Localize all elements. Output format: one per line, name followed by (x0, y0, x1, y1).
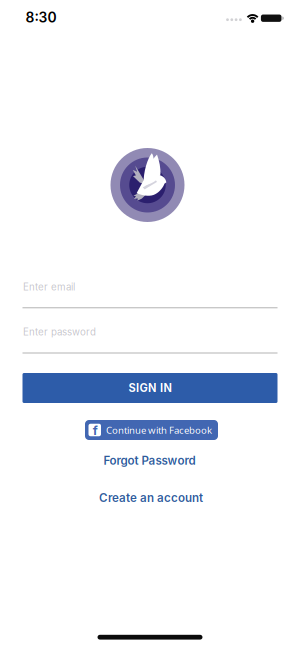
staticText: Enter password (23, 326, 96, 338)
staticText: Continue with Facebook (106, 423, 212, 437)
staticText: Forgot Password (103, 453, 195, 467)
button[interactable]: f (85, 420, 218, 440)
button[interactable]: Create an account (99, 491, 203, 505)
staticText: Enter email (23, 281, 75, 293)
staticText: f (93, 423, 98, 438)
button[interactable]: SIGN IN (22, 373, 277, 403)
staticText: 8:30 (25, 9, 56, 26)
staticText: Create an account (99, 491, 203, 505)
staticText: SIGN IN (128, 381, 171, 395)
button[interactable]: Forgot Password (103, 453, 195, 467)
